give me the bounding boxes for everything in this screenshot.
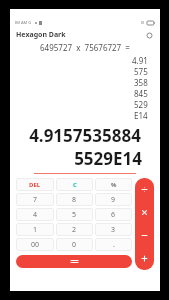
button[interactable]: Divide xyxy=(135,178,154,201)
button[interactable]: 6 xyxy=(95,208,132,221)
button[interactable]: 0 xyxy=(56,238,93,251)
button[interactable]: 00 xyxy=(16,238,54,251)
staticText: 00 xyxy=(31,240,40,250)
button[interactable]: 3 xyxy=(95,223,132,236)
staticText: C xyxy=(73,181,77,189)
staticText: 575 xyxy=(134,66,148,77)
staticText: 529 xyxy=(134,99,148,110)
staticText: DEL xyxy=(29,181,41,189)
button[interactable]: Equals xyxy=(16,255,132,268)
button[interactable]: % xyxy=(95,178,132,191)
staticText: 2 xyxy=(72,225,77,235)
staticText: . xyxy=(113,240,115,250)
button[interactable]: . xyxy=(95,238,132,251)
staticText: 358 xyxy=(134,77,148,88)
staticText: E14 xyxy=(134,110,148,121)
button[interactable]: 9 xyxy=(95,193,132,206)
staticText: IM AM G xyxy=(15,20,32,25)
button[interactable]: 7 xyxy=(16,193,54,206)
staticText: 4.9157535884 xyxy=(16,124,154,147)
button[interactable]: Theme xyxy=(144,30,154,40)
staticText: 6 xyxy=(111,210,116,220)
button[interactable]: 8 xyxy=(56,193,93,206)
button[interactable]: 5 xyxy=(56,208,93,221)
staticText: % xyxy=(111,181,117,189)
staticText: 5529E14 xyxy=(16,147,142,170)
staticText: 3 xyxy=(111,225,116,235)
button[interactable]: 1 xyxy=(16,223,54,236)
button[interactable]: Add xyxy=(135,247,154,270)
staticText: 6495727 x 75676727 = xyxy=(40,42,130,53)
staticText: 5 xyxy=(72,210,77,220)
button[interactable]: DEL xyxy=(16,178,54,191)
staticText: 7 xyxy=(33,195,38,205)
button[interactable]: Multiply xyxy=(135,201,154,224)
staticText: 1 xyxy=(33,225,38,235)
button[interactable]: 4 xyxy=(16,208,54,221)
staticText: 845 xyxy=(134,88,148,99)
staticText: 4.91 xyxy=(132,55,148,66)
staticText: lll xyxy=(141,20,145,25)
staticText: 0 xyxy=(72,240,77,250)
button[interactable]: 2 xyxy=(56,223,93,236)
staticText: 9 xyxy=(111,195,116,205)
button[interactable]: C xyxy=(56,178,93,191)
staticText: 8 xyxy=(72,195,77,205)
staticText: Hexagon Dark xyxy=(16,30,66,40)
button[interactable]: Subtract xyxy=(135,224,154,247)
staticText: 4 xyxy=(33,210,38,220)
